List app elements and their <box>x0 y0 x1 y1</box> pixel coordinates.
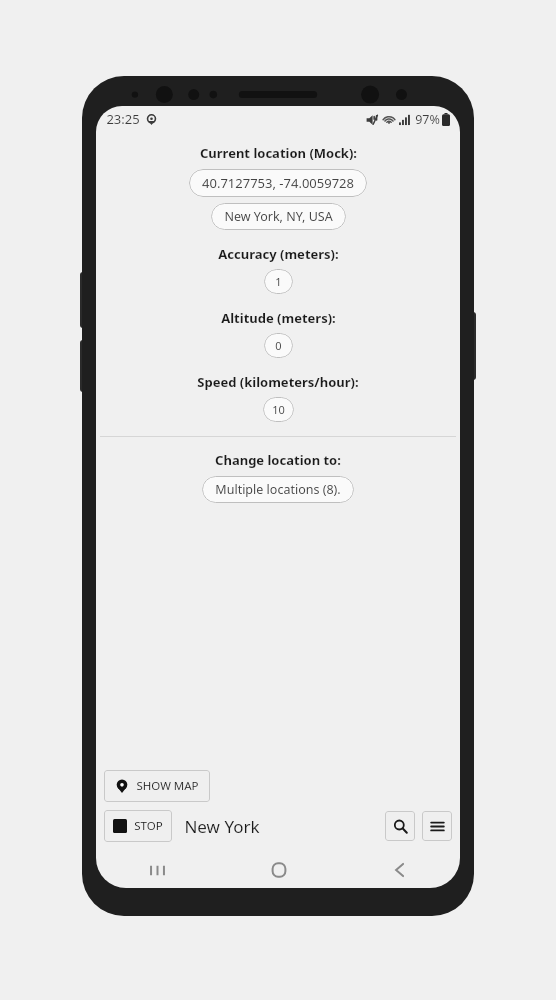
staticText: Altitude (meters): <box>221 309 336 327</box>
staticText: Speed (kilometers/hour): <box>197 373 359 391</box>
staticText: Multiple locations (8). <box>215 481 341 498</box>
staticText: Change location to: <box>215 451 341 469</box>
button[interactable]: 10 <box>263 397 294 422</box>
staticText: 10 <box>272 402 285 417</box>
button[interactable]: Multiple locations (8). <box>202 476 354 503</box>
button[interactable]: Back <box>339 852 460 888</box>
staticText: New York, NY, USA <box>224 208 333 225</box>
button[interactable]: 40.7127753, -74.0059728 <box>189 169 367 197</box>
staticText: SHOW MAP <box>136 778 199 794</box>
button[interactable]: 0 <box>264 333 293 358</box>
staticText: Accuracy (meters): <box>218 245 339 263</box>
button[interactable]: Search <box>385 811 415 841</box>
staticText: New York <box>184 815 260 838</box>
button[interactable]: Recents <box>96 852 218 888</box>
staticText: 97% <box>415 111 440 128</box>
button[interactable]: New York, NY, USA <box>211 203 346 230</box>
staticText: STOP <box>134 818 163 834</box>
button[interactable]: STOP <box>104 810 172 842</box>
staticText: 0 <box>275 338 282 353</box>
button[interactable]: Menu <box>422 811 452 841</box>
staticText: 1 <box>275 274 282 289</box>
button[interactable]: 1 <box>264 269 293 294</box>
button[interactable]: SHOW MAP <box>104 770 210 802</box>
staticText: 40.7127753, -74.0059728 <box>202 174 354 192</box>
staticText: Current location (Mock): <box>200 144 357 162</box>
staticText: 23:25 <box>106 110 140 128</box>
button[interactable]: Home <box>218 852 339 888</box>
